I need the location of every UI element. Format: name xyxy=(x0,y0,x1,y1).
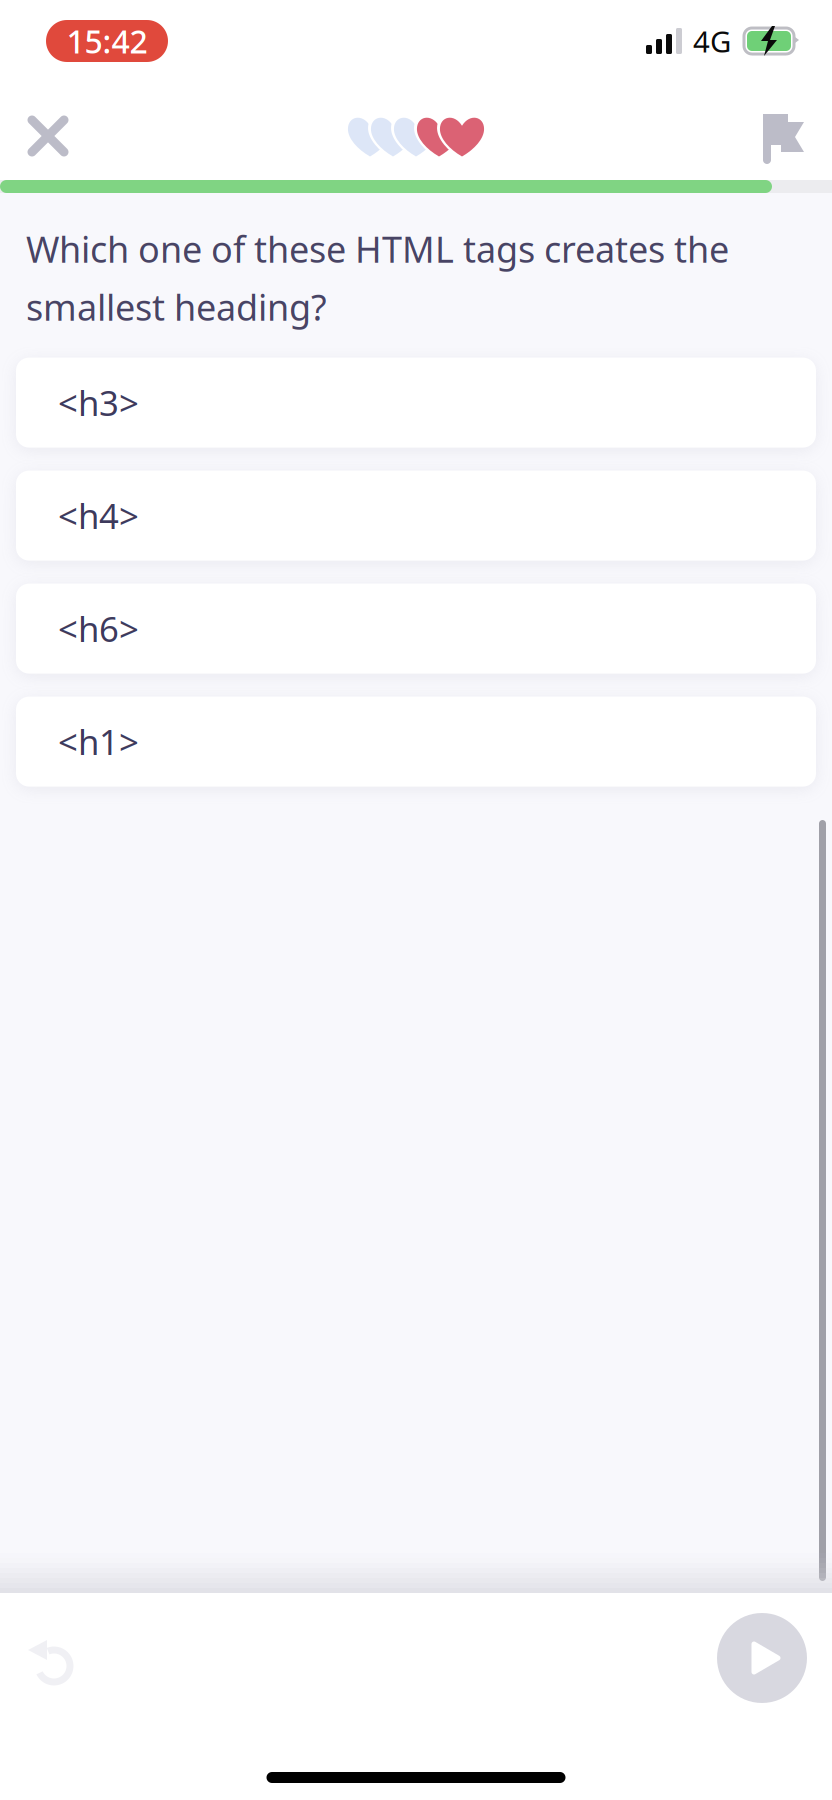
staticText: <h3> xyxy=(58,380,139,426)
button[interactable]: <h1> xyxy=(16,697,816,787)
staticText: <h1> xyxy=(58,719,139,765)
staticText: 4G xyxy=(693,21,731,60)
button[interactable]: <h3> xyxy=(16,358,816,448)
staticText: <h4> xyxy=(58,493,139,539)
staticText: Which one of these HTML tags creates the… xyxy=(26,225,729,331)
button[interactable]: <h4> xyxy=(16,471,816,561)
button[interactable]: <h6> xyxy=(16,584,816,674)
button[interactable]: Report xyxy=(736,92,832,180)
staticText: <h6> xyxy=(58,606,139,652)
button[interactable]: Continue xyxy=(692,1593,832,1723)
button[interactable]: Undo xyxy=(0,1593,100,1723)
button[interactable]: Close xyxy=(0,92,96,180)
staticText: 15:42 xyxy=(66,20,147,62)
